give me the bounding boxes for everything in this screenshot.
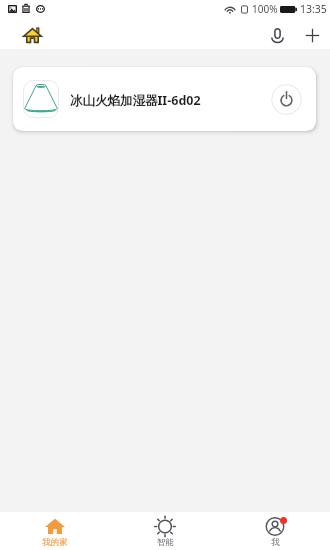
staticText: 我的家 <box>42 537 68 548</box>
button[interactable]: 我的家 <box>0 512 110 550</box>
staticText: 冰山火焰加湿器II-6d02 <box>70 92 201 109</box>
staticText: 智能 <box>157 537 174 548</box>
staticText: 100% <box>252 2 278 16</box>
button[interactable]: Power <box>271 84 302 115</box>
button[interactable]: 我 <box>220 512 330 550</box>
staticText: 13:35 <box>300 2 327 16</box>
button[interactable]: 智能 <box>110 512 220 550</box>
button[interactable]: 冰山火焰加湿器II-6d02 <box>13 67 316 131</box>
button[interactable]: Voice <box>261 19 293 51</box>
button[interactable]: Add device <box>296 19 328 51</box>
button[interactable]: My home <box>14 17 50 53</box>
staticText: 我 <box>271 537 280 548</box>
